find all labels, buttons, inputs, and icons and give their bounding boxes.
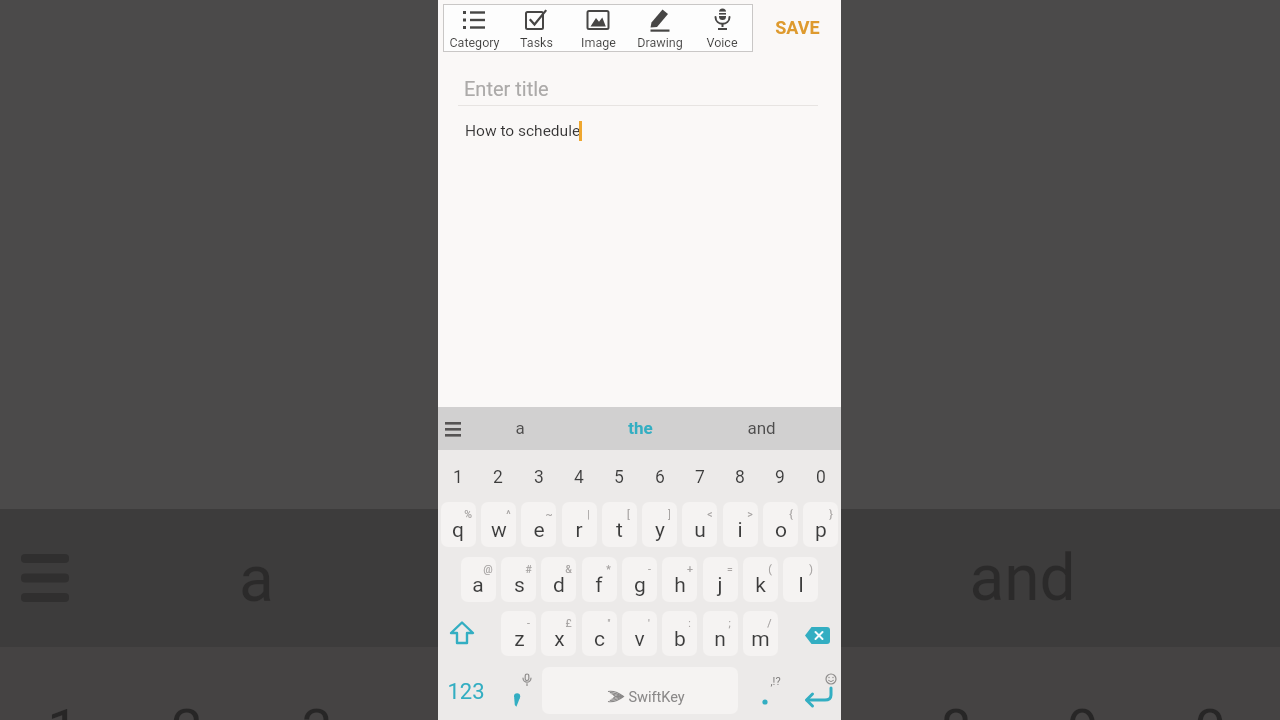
button[interactable]	[723, 502, 758, 547]
button[interactable]	[622, 611, 657, 656]
staticText: i	[737, 518, 743, 543]
button[interactable]	[662, 557, 697, 602]
staticText: 9	[775, 467, 785, 488]
button[interactable]	[798, 611, 841, 656]
staticText: &	[565, 563, 572, 575]
staticText: u	[694, 518, 706, 543]
button[interactable]	[622, 557, 657, 602]
button[interactable]	[582, 611, 617, 656]
button[interactable]	[501, 557, 536, 602]
staticText: 6	[655, 467, 665, 488]
staticText: m	[751, 627, 770, 652]
button[interactable]	[691, 4, 753, 52]
staticText: ~	[545, 508, 553, 520]
button[interactable]	[461, 557, 496, 602]
button[interactable]	[783, 557, 818, 602]
staticText: "	[607, 617, 611, 629]
staticText: and	[969, 541, 1076, 616]
button[interactable]	[582, 557, 617, 602]
staticText: 2	[171, 697, 203, 720]
button[interactable]	[541, 557, 576, 602]
button[interactable]	[567, 4, 629, 52]
staticText: 3	[301, 697, 333, 720]
button[interactable]	[796, 666, 841, 714]
button[interactable]	[703, 611, 738, 656]
button[interactable]	[744, 666, 796, 714]
staticText: :	[688, 617, 691, 629]
staticText: ,!?	[770, 675, 781, 688]
button[interactable]: SAVE	[727, 9, 867, 45]
staticText: j	[717, 573, 723, 598]
staticText: Enter title	[464, 77, 549, 100]
button[interactable]	[443, 4, 505, 52]
staticText: a	[239, 542, 274, 617]
staticText: 5	[614, 467, 624, 488]
staticText: ]	[668, 508, 671, 520]
button[interactable]: a	[487, 411, 553, 445]
staticText: 1	[47, 697, 79, 720]
staticText: /	[767, 617, 772, 629]
staticText: a	[515, 418, 525, 438]
staticText: 0	[816, 467, 826, 488]
button[interactable]	[743, 611, 778, 656]
staticText: 8	[940, 697, 972, 720]
staticText: s	[514, 573, 525, 598]
button[interactable]: the	[585, 411, 695, 445]
staticText: r	[575, 518, 583, 543]
staticText: p	[815, 518, 827, 543]
staticText: q	[452, 518, 464, 543]
button[interactable]	[562, 502, 597, 547]
staticText: a	[472, 573, 484, 598]
staticText: v	[634, 627, 645, 652]
staticText: 3	[534, 467, 544, 488]
button[interactable]	[505, 4, 567, 52]
staticText: the	[628, 418, 653, 438]
button[interactable]	[642, 502, 677, 547]
button[interactable]	[743, 557, 778, 602]
button[interactable]	[441, 502, 476, 547]
staticText: {	[789, 508, 793, 520]
button[interactable]	[521, 502, 556, 547]
staticText: e	[533, 518, 545, 543]
button[interactable]	[602, 502, 637, 547]
staticText: o	[775, 518, 787, 543]
staticText: n	[714, 627, 726, 652]
staticText: t	[616, 518, 623, 543]
button[interactable]	[629, 4, 691, 52]
button[interactable]	[542, 667, 738, 714]
button[interactable]: 123	[394, 670, 537, 714]
staticText: <	[707, 508, 713, 520]
staticText: %	[464, 508, 472, 520]
staticText: Drawing	[637, 35, 683, 50]
staticText: Image	[581, 35, 616, 50]
button[interactable]	[541, 611, 576, 656]
staticText: ;	[728, 617, 731, 629]
staticText: z	[514, 627, 525, 652]
staticText: l	[798, 573, 804, 598]
staticText: x	[554, 627, 565, 652]
staticText: *	[606, 563, 611, 575]
staticText: 123	[447, 679, 485, 705]
staticText: -	[527, 617, 530, 629]
button[interactable]	[440, 611, 485, 656]
button[interactable]	[481, 502, 516, 547]
staticText: -	[648, 563, 651, 575]
button[interactable]	[763, 502, 798, 547]
staticText: and	[747, 418, 776, 438]
button[interactable]	[501, 611, 536, 656]
staticText: How to schedule	[465, 122, 581, 140]
button[interactable]	[494, 666, 538, 714]
staticText: Voice	[706, 35, 738, 50]
staticText: g	[634, 573, 646, 598]
staticText: SwiftKey	[628, 689, 685, 706]
button[interactable]	[662, 611, 697, 656]
staticText: 8	[735, 467, 745, 488]
staticText: 1	[453, 467, 463, 488]
staticText: ^	[506, 508, 511, 520]
button[interactable]: and	[706, 411, 816, 445]
button[interactable]	[682, 502, 717, 547]
staticText: |	[587, 508, 590, 520]
button[interactable]	[703, 557, 738, 602]
staticText: =	[727, 563, 733, 575]
button[interactable]	[803, 502, 838, 547]
